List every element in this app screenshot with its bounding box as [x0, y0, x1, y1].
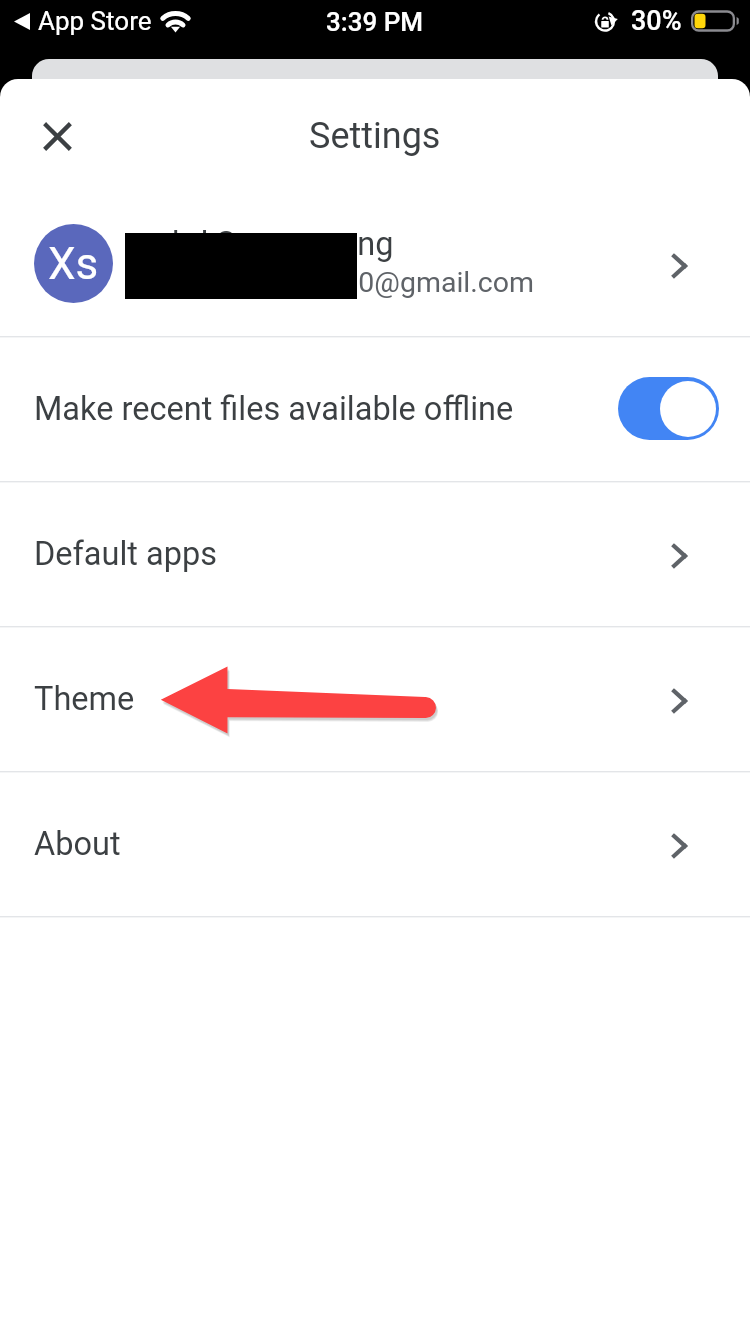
button[interactable]: Xs — [0, 191, 750, 336]
staticText: 30% — [631, 5, 682, 37]
staticText: Settings — [309, 115, 441, 157]
staticText: Default apps — [34, 535, 218, 573]
staticText: Make recent files available offline — [34, 390, 514, 428]
staticText: mohamedxsayed10@gmail.com — [125, 266, 534, 299]
button[interactable]: Default apps — [0, 481, 750, 626]
staticText: 3:39 PM — [326, 7, 424, 37]
button[interactable]: Make recent files available offline, on — [618, 377, 719, 440]
button[interactable]: About — [0, 771, 750, 916]
staticText: App Store — [38, 6, 152, 36]
staticText: mohd Sanoa weng — [125, 225, 394, 263]
staticText: Xs — [48, 238, 99, 290]
button[interactable]: Theme — [0, 626, 750, 771]
staticText: About — [34, 825, 121, 863]
staticText: Theme — [34, 680, 135, 718]
button[interactable]: Make recent files available offline — [0, 336, 750, 481]
button[interactable]: Close — [21, 100, 93, 172]
